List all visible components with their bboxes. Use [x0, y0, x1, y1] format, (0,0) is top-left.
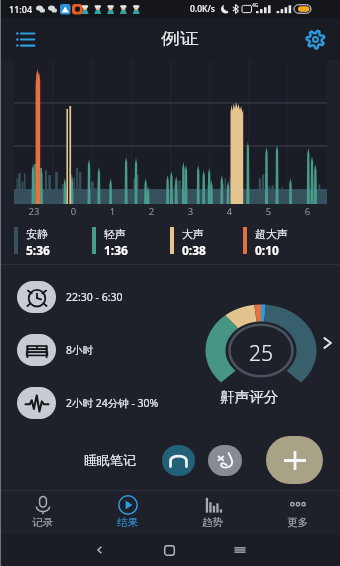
- staticText: 0:10: [255, 242, 279, 258]
- staticText: 轻声: [104, 227, 126, 241]
- button[interactable]: Menu: [6, 20, 44, 58]
- button[interactable]: Snore score: [205, 304, 317, 397]
- button[interactable]: 记录: [0, 490, 85, 534]
- button[interactable]: Mouth guard: [162, 445, 195, 476]
- staticText: 22:30 - 6:30: [66, 290, 123, 304]
- staticText: 结果: [117, 516, 138, 529]
- staticText: 4G: [252, 2, 259, 9]
- staticText: 11:04: [9, 3, 33, 15]
- staticText: 6: [288, 205, 327, 218]
- staticText: 大声: [182, 227, 204, 241]
- staticText: 0.0K/s: [190, 3, 215, 15]
- staticText: 0:38: [182, 242, 206, 258]
- staticText: 安静: [26, 227, 48, 241]
- button[interactable]: 更多: [255, 490, 340, 534]
- staticText: 更多: [287, 516, 308, 529]
- staticText: 例证: [161, 29, 199, 49]
- staticText: 4: [210, 205, 249, 218]
- button[interactable]: 22:30 - 6:30: [17, 281, 195, 313]
- button[interactable]: Add note: [266, 436, 323, 484]
- staticText: 睡眠笔记: [84, 452, 136, 468]
- button[interactable]: Settings: [296, 20, 334, 58]
- staticText: 5: [249, 205, 288, 218]
- staticText: 2: [132, 205, 171, 218]
- staticText: 3: [171, 205, 210, 218]
- staticText: 0: [54, 205, 93, 218]
- staticText: 1: [93, 205, 132, 218]
- button[interactable]: 趋势: [170, 490, 255, 534]
- staticText: 趋势: [202, 516, 223, 529]
- button[interactable]: 8小时: [17, 334, 195, 366]
- staticText: 记录: [32, 516, 53, 529]
- staticText: 23: [14, 205, 54, 218]
- staticText: 超大声: [255, 227, 288, 241]
- staticText: 1:36: [104, 242, 128, 258]
- button[interactable]: 2小时 24分钟 - 30%: [17, 387, 195, 419]
- button[interactable]: Nasal strip: [208, 445, 242, 476]
- staticText: 2小时 24分钟 - 30%: [66, 396, 159, 410]
- staticText: 鼾声评分: [220, 388, 278, 406]
- staticText: 8小时: [66, 343, 94, 357]
- staticText: 25: [249, 339, 273, 368]
- button[interactable]: Details: [318, 334, 336, 352]
- button[interactable]: 结果: [85, 490, 170, 534]
- staticText: 5:36: [26, 242, 50, 258]
